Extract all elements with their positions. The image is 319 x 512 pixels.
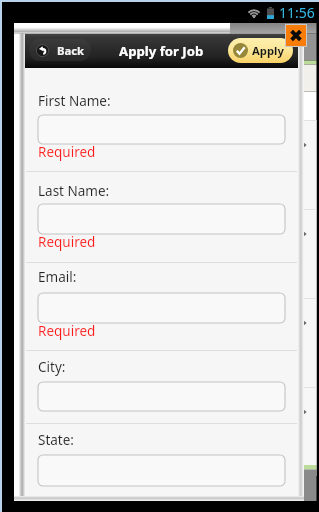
staticText: Required bbox=[38, 322, 96, 340]
staticText: 11:56 bbox=[279, 3, 315, 22]
staticText: Back bbox=[57, 43, 85, 58]
staticText: State: bbox=[38, 431, 74, 449]
button[interactable]: Back bbox=[29, 39, 91, 61]
button[interactable]: Apply bbox=[228, 38, 293, 63]
staticText: Last Name: bbox=[38, 182, 110, 200]
staticText: Required bbox=[38, 233, 96, 251]
staticText: First Name: bbox=[38, 92, 111, 110]
staticText: Apply for Job bbox=[119, 42, 204, 60]
button[interactable] bbox=[38, 293, 285, 323]
staticText: City: bbox=[38, 358, 66, 376]
staticText: Email: bbox=[38, 268, 77, 286]
button[interactable] bbox=[38, 455, 285, 486]
staticText: Apply bbox=[252, 43, 284, 58]
button[interactable] bbox=[38, 382, 285, 411]
button[interactable] bbox=[38, 204, 285, 234]
button[interactable] bbox=[38, 115, 285, 144]
staticText: Required bbox=[38, 143, 96, 161]
button[interactable]: Close bbox=[286, 25, 306, 46]
